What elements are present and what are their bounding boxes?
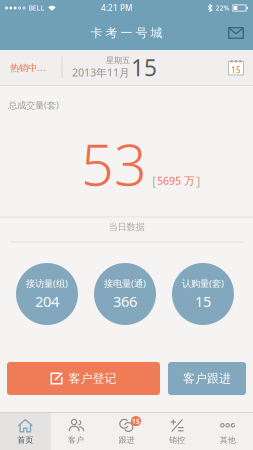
staticText: BELL — [28, 4, 44, 12]
button[interactable]: 销控 — [152, 413, 202, 450]
staticText: [ — [152, 172, 156, 189]
staticText: 当日数据 — [108, 221, 144, 233]
staticText: 接电量(通) — [104, 277, 146, 289]
staticText: 其他 — [220, 435, 236, 445]
staticText: 首页 — [17, 435, 33, 445]
staticText: 5695 万 — [157, 173, 195, 188]
button[interactable]: 客户跟进 — [168, 362, 246, 395]
staticText: 22% — [215, 4, 229, 12]
staticText: 跟进 — [118, 435, 134, 445]
staticText: 204 — [35, 291, 59, 311]
staticText: 4:21 PM — [101, 3, 132, 13]
button[interactable]: 其他 — [202, 413, 253, 450]
staticText: 2013年11月 — [72, 65, 130, 79]
staticText: 星期五 — [106, 55, 130, 65]
staticText: 15 — [132, 417, 140, 426]
staticText: 热销中... — [10, 61, 46, 74]
staticText: 客户跟进 — [183, 371, 231, 386]
staticText: 15 — [231, 65, 241, 75]
staticText: 总成交量(套) — [8, 99, 59, 111]
staticText: 366 — [113, 291, 137, 311]
button[interactable]: 客户登记 — [7, 362, 160, 395]
button[interactable]: 客户 — [51, 413, 101, 450]
staticText: ] — [196, 172, 200, 189]
staticText: 53 — [81, 125, 147, 201]
staticText: 卡考一号城 — [90, 26, 162, 40]
staticText: 认购量(套) — [182, 277, 224, 289]
staticText: 15 — [131, 52, 157, 82]
button[interactable]: 消息 — [228, 19, 253, 47]
staticText: 接访量(组) — [26, 277, 68, 289]
button[interactable]: 15 — [101, 413, 152, 450]
button[interactable]: 首页 — [0, 413, 51, 450]
staticText: 15 — [195, 291, 211, 311]
staticText: 客户登记 — [68, 371, 116, 386]
button[interactable]: 日历 — [228, 59, 253, 75]
staticText: 销控 — [169, 435, 185, 445]
staticText: 客户 — [68, 435, 84, 445]
